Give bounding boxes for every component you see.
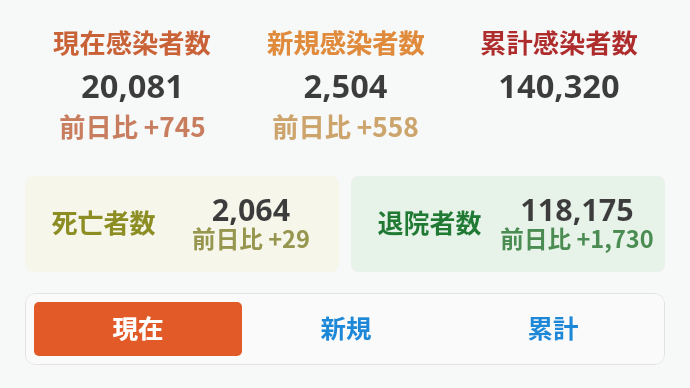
button[interactable]: 退院者数 [351,176,665,272]
staticText: 累計感染者数 [480,22,638,60]
staticText: 2,504 [303,63,388,108]
staticText: 累計 [527,308,579,345]
button[interactable]: 現在 [34,302,242,356]
staticText: 2,064 [171,188,331,230]
staticText: 前日比 +1,730 [497,221,657,255]
staticText: 新規 [320,308,372,345]
staticText: 前日比 +558 [272,107,419,145]
staticText: 前日比 +29 [171,221,331,255]
staticText: 新規感染者数 [267,22,425,60]
staticText: 140,320 [498,63,620,108]
staticText: 死亡者数 [51,203,156,241]
button[interactable]: 死亡者数 [25,176,339,272]
staticText: 現在感染者数 [53,22,211,60]
staticText: 20,081 [81,63,184,108]
staticText: 118,175 [497,188,657,230]
staticText: 現在 [112,308,164,345]
button[interactable]: 累計 [449,302,656,356]
staticText: 退院者数 [377,203,482,241]
button[interactable]: 新規 [242,302,449,356]
staticText: 前日比 +745 [59,107,206,145]
